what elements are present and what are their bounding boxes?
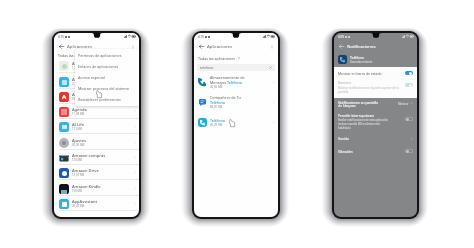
staticText: Permitir interrupciones — [338, 113, 375, 117]
button[interactable]: Teléfono — [194, 112, 278, 132]
button[interactable]: Toggle on — [405, 71, 413, 75]
staticText: A — [62, 93, 67, 101]
staticText: 46,29 MB — [210, 123, 223, 127]
button[interactable]: Back — [57, 42, 65, 50]
staticText: Banners — [338, 80, 352, 85]
staticText: Notificaciones en pantalla de bloqueo — [338, 100, 398, 108]
staticText: Aplicaciones — [67, 43, 92, 49]
staticText: Teléfono — [210, 118, 225, 123]
staticText: 171 MB — [72, 127, 82, 131]
staticText: Agenda — [72, 107, 87, 112]
button[interactable]: Enlaces de aplicaciones — [75, 61, 139, 72]
staticText: Amazon Kindle — [72, 184, 101, 189]
staticText: 40,56 MB — [210, 85, 223, 89]
button[interactable]: Toggle off — [405, 117, 413, 121]
button[interactable]: Sonido — [334, 132, 417, 144]
button[interactable]: More options — [129, 43, 136, 50]
staticText: Adobe Scan — [72, 92, 95, 97]
staticText: 158 MB — [72, 189, 82, 193]
staticText: Permisos de aplicaciones — [78, 53, 122, 58]
staticText: Amazon Drive — [72, 168, 99, 173]
staticText: 18 MB — [72, 97, 81, 101]
staticText: Ajustes — [72, 138, 86, 143]
staticText: 2,30 MB — [72, 82, 83, 86]
button[interactable]: Agenda — [54, 104, 139, 119]
staticText: 4:15 — [198, 35, 204, 39]
staticText: 13,07 MB — [72, 173, 85, 177]
staticText: Recibir notificaciones de esta aplicació… — [338, 118, 388, 130]
button[interactable]: More options — [268, 43, 275, 50]
staticText: 88,81 MB — [210, 105, 223, 109]
staticText: Acceso especial — [78, 75, 105, 80]
button[interactable]: AI Life — [54, 119, 139, 134]
staticText: Adobe Acrobat — [72, 77, 101, 82]
button[interactable]: telefono — [197, 64, 275, 71]
staticText: 1,20 MB — [72, 66, 83, 70]
staticText: Teléfono — [350, 55, 365, 60]
staticText: Sonido — [338, 136, 410, 140]
button[interactable]: Adaptador — [54, 58, 139, 73]
button[interactable]: Amazon Kindle — [54, 181, 139, 196]
staticText: 20,47 MB — [72, 204, 85, 208]
staticText: 130 MB — [72, 158, 82, 162]
button[interactable]: AppAssistant — [54, 196, 139, 211]
staticText: Restablecer preferencias — [78, 97, 121, 102]
button[interactable]: Acceso especial — [75, 72, 139, 83]
staticText: Mostrar notificaciones en la parte super… — [338, 86, 403, 93]
staticText: telefono — [200, 65, 214, 70]
button[interactable]: Almacenamiento de — [194, 72, 278, 92]
button[interactable]: Back — [197, 42, 205, 50]
button[interactable]: Permisos de aplicaciones — [75, 50, 139, 61]
button[interactable]: Restablecer preferencias — [75, 94, 139, 105]
staticText: Mostrar en barra de estado — [338, 71, 382, 76]
staticText: Mostrar — [398, 102, 409, 106]
button[interactable]: Amazon compras — [54, 150, 139, 165]
button[interactable]: Vibración — [334, 144, 417, 157]
button[interactable]: Adobe Acrobat — [54, 74, 139, 89]
button[interactable]: Mostrar procesos del sistema — [75, 83, 139, 94]
staticText: Aplicaciones — [207, 43, 232, 49]
button[interactable]: Back — [337, 42, 345, 50]
staticText: Llamada entrante — [350, 60, 373, 64]
button[interactable]: A — [54, 89, 139, 104]
staticText: Compañero de Tu — [210, 95, 241, 100]
staticText: AI Life — [72, 122, 85, 127]
button[interactable]: Mostrar en barra de estado — [334, 67, 417, 79]
staticText: 4:15 — [58, 35, 64, 39]
button[interactable]: Compañero de Tu — [194, 92, 278, 112]
staticText: AppAssistant — [72, 199, 97, 204]
staticText: 40,05 MB — [72, 143, 85, 147]
staticText: Vibración — [338, 149, 405, 153]
staticText: Todas las aplicaciones — [198, 56, 236, 61]
staticText: Almacenamiento de — [210, 75, 245, 80]
button[interactable]: Notificaciones en pantalla de bloqueo — [334, 98, 417, 109]
staticText: 4:15 — [338, 35, 344, 39]
staticText: Adaptador — [72, 61, 93, 66]
staticText: Amazon compras — [72, 153, 106, 158]
button[interactable]: Banners — [334, 79, 417, 98]
button[interactable]: Permitir interrupciones — [334, 109, 417, 132]
button[interactable]: Toggle — [405, 83, 413, 87]
staticText: Todas las aplicaciones — [58, 53, 96, 58]
staticText: Mostrar procesos del sistema — [78, 86, 129, 91]
staticText: Notificaciones — [347, 43, 376, 49]
staticText: Enlaces de aplicaciones — [78, 64, 119, 69]
button[interactable]: Ajustes — [54, 135, 139, 150]
staticText: 11,58 MB — [72, 112, 85, 116]
button[interactable]: Toggle off — [405, 149, 413, 153]
button[interactable]: Amazon Drive — [54, 165, 139, 180]
staticText: Teléfono — [210, 100, 225, 105]
staticText: Mensajes — [210, 80, 227, 85]
staticText: Teléfono — [227, 80, 242, 85]
